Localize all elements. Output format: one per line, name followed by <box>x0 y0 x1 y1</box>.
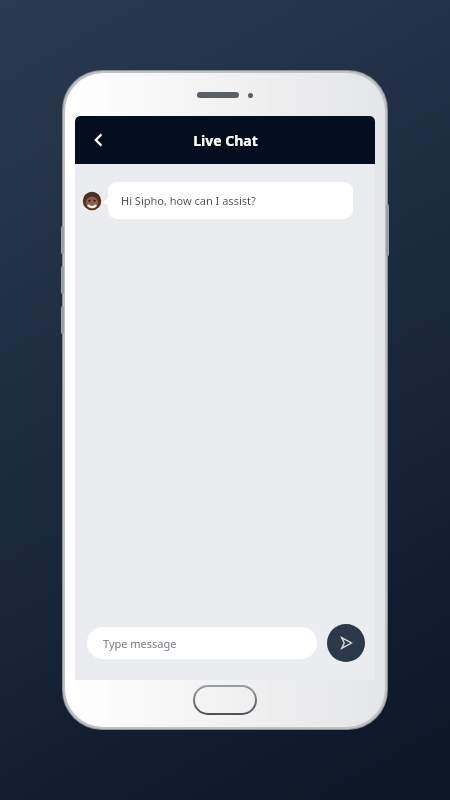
staticText: Hi Sipho, how can I assist? <box>121 193 256 208</box>
staticText: Type message <box>103 636 177 651</box>
button[interactable]: Hi Sipho, how can I assist? <box>108 182 353 219</box>
staticText: Live Chat <box>193 131 258 150</box>
button[interactable]: Type message <box>87 627 317 659</box>
button[interactable]: Home <box>194 686 256 714</box>
button[interactable]: Send <box>327 624 365 662</box>
button[interactable]: Back <box>81 122 117 158</box>
